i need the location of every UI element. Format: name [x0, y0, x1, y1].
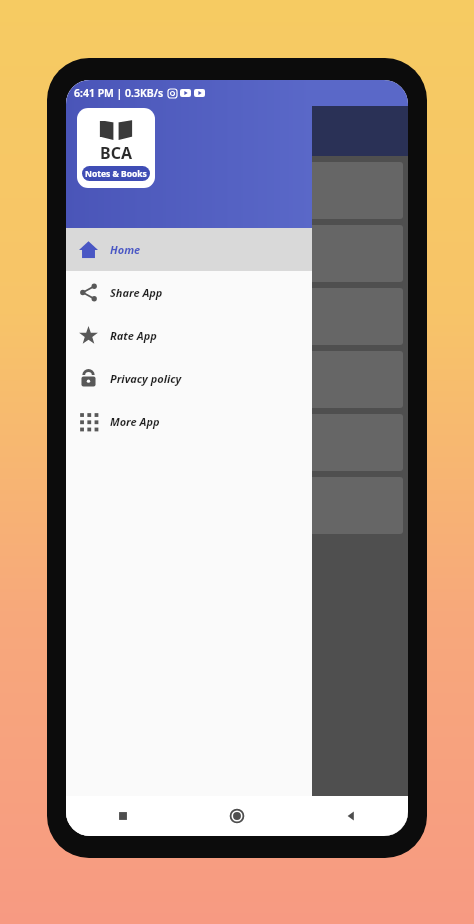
- button[interactable]: More App: [66, 400, 312, 443]
- button[interactable]: Rate App: [66, 314, 312, 357]
- button[interactable]: BCA: [77, 108, 155, 188]
- button[interactable]: Home: [180, 796, 294, 836]
- button[interactable]: [71, 288, 403, 345]
- staticText: BCA: [100, 142, 132, 164]
- button[interactable]: [71, 477, 403, 534]
- button[interactable]: [71, 162, 403, 219]
- staticText: Rate App: [110, 328, 157, 343]
- staticText: Home: [110, 242, 141, 257]
- button[interactable]: [71, 225, 403, 282]
- staticText: 6:41 PM | 0.3KB/s: [74, 86, 164, 100]
- button[interactable]: Privacy policy: [66, 357, 312, 400]
- button[interactable]: [71, 414, 403, 471]
- button[interactable]: Recents: [66, 796, 180, 836]
- button[interactable]: Home: [66, 228, 312, 271]
- button[interactable]: Back: [294, 796, 408, 836]
- staticText: More App: [110, 414, 160, 429]
- staticText: Privacy policy: [110, 371, 182, 386]
- staticText: Share App: [110, 285, 163, 300]
- button[interactable]: [71, 351, 403, 408]
- button[interactable]: Share App: [66, 271, 312, 314]
- staticText: Notes & Books: [85, 168, 147, 180]
